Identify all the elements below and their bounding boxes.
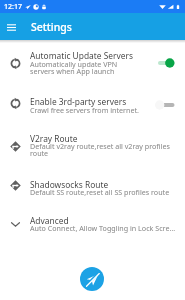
staticText: V2ray Route (30, 133, 174, 144)
button[interactable]: Toggle off (154, 97, 178, 113)
staticText: Default SS route,reset all SS profiles r… (30, 187, 174, 197)
staticText: Shadowsocks Route (30, 179, 174, 190)
staticText: Auto Connect, Allow Toggling in Lock Scr… (30, 223, 176, 233)
button[interactable] (0, 86, 185, 120)
button[interactable] (0, 207, 185, 241)
button[interactable] (0, 168, 185, 202)
button[interactable]: Connect (80, 267, 104, 291)
staticText: Automatically update VPN servers when Ap… (30, 59, 142, 76)
staticText: Settings (31, 20, 72, 34)
button[interactable]: Toggle on (154, 55, 178, 71)
staticText: Crawl free servers from internet. (30, 105, 142, 115)
button[interactable] (0, 46, 185, 80)
staticText: Advanced (30, 215, 176, 226)
staticText: Default v2ray route,reset all v2ray prof… (30, 141, 174, 158)
staticText: Automatic Update Servers (30, 50, 142, 61)
staticText: 12:17 (4, 2, 22, 12)
staticText: Enable 3rd-party servers (30, 96, 142, 107)
button[interactable] (0, 129, 185, 163)
button[interactable]: Open navigation menu (0, 16, 22, 38)
